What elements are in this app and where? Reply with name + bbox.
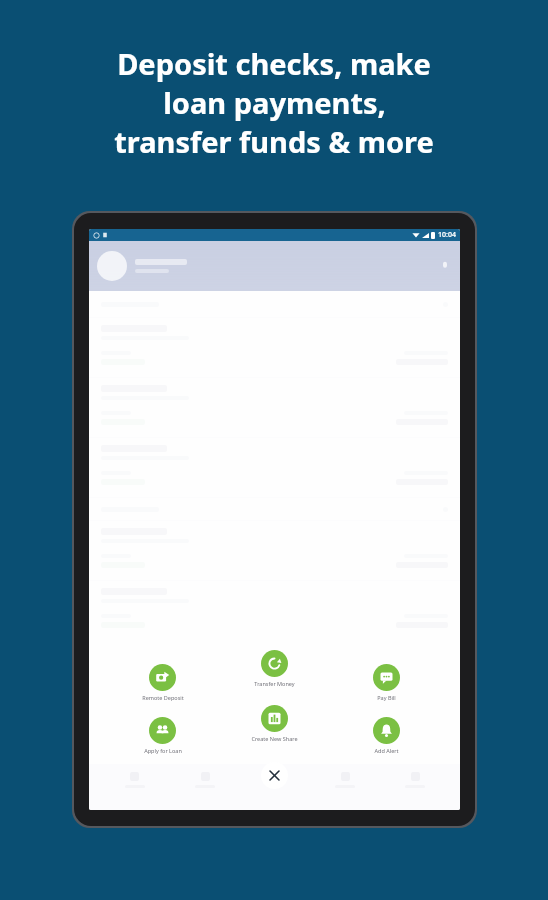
staticText: Add Alert [374, 747, 399, 754]
staticText: Pay Bill [377, 694, 396, 701]
staticText: Transfer Money [254, 680, 295, 687]
button[interactable]: Apply for Loan [107, 717, 218, 754]
button[interactable]: Add Alert [330, 717, 442, 754]
button[interactable]: Microphone [89, 241, 460, 291]
button[interactable]: Close [261, 762, 288, 789]
staticText: transfer funds & more [114, 122, 434, 161]
staticText: Deposit checks, make [117, 44, 431, 83]
staticText: Remote Deposit [142, 694, 184, 701]
button[interactable]: Microphone [438, 259, 452, 273]
staticText: loan payments, [163, 83, 386, 122]
button[interactable]: Transfer Money [218, 650, 330, 687]
staticText: Apply for Loan [144, 747, 182, 754]
staticText: Create New Share [251, 735, 298, 742]
staticText: 10:04 [438, 230, 456, 240]
button[interactable]: Remote Deposit [107, 664, 218, 701]
button[interactable]: Create New Share [218, 705, 330, 742]
button[interactable]: Pay Bill [330, 664, 442, 701]
